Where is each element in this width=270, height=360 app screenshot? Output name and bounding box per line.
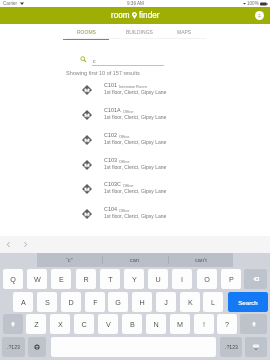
staticText: C103 xyxy=(104,157,117,163)
staticText: C103C xyxy=(104,181,121,187)
button[interactable]: K xyxy=(180,292,200,312)
button[interactable]: Search xyxy=(80,56,87,63)
staticText: “c” xyxy=(66,257,73,263)
button[interactable]: A xyxy=(13,292,33,312)
button[interactable]: Shift xyxy=(240,314,267,334)
staticText: D xyxy=(68,298,74,306)
staticText: 1st floor, Clerici, Gipsy Lane xyxy=(104,89,167,95)
staticText: 1st floor, Clerici, Gipsy Lane xyxy=(104,114,167,120)
staticText: c xyxy=(93,58,96,64)
button[interactable]: U xyxy=(148,269,168,289)
button[interactable]: E xyxy=(51,269,71,289)
button[interactable]: Previous field xyxy=(3,239,14,250)
button[interactable]: Shift xyxy=(3,314,23,334)
button[interactable]: Search xyxy=(228,292,268,312)
staticText: O xyxy=(204,275,210,283)
button[interactable]: C xyxy=(74,314,94,334)
staticText: Office xyxy=(119,208,130,212)
button[interactable]: H xyxy=(132,292,152,312)
button[interactable]: Account xyxy=(255,11,264,20)
button[interactable]: Hide keyboard xyxy=(245,337,267,357)
staticText: ROOMS xyxy=(77,29,96,35)
button[interactable]: G xyxy=(108,292,128,312)
button[interactable]: M xyxy=(170,314,190,334)
button[interactable]: L xyxy=(203,292,223,312)
staticText: 1st floor, Clerici, Gipsy Lane xyxy=(104,164,167,170)
button[interactable]: V xyxy=(98,314,118,334)
staticText: X xyxy=(58,320,63,328)
staticText: P xyxy=(229,275,234,283)
button[interactable]: can xyxy=(102,253,168,267)
staticText: L xyxy=(211,298,215,306)
staticText: Office xyxy=(119,159,130,163)
staticText: J xyxy=(164,298,168,306)
staticText: A xyxy=(21,298,26,306)
button[interactable]: Q xyxy=(3,269,23,289)
staticText: C101A xyxy=(104,107,121,113)
button[interactable]: B xyxy=(122,314,142,334)
staticText: V xyxy=(106,320,111,328)
button[interactable]: I xyxy=(172,269,192,289)
button[interactable]: N xyxy=(146,314,166,334)
button[interactable]: O xyxy=(197,269,217,289)
button[interactable]: ? xyxy=(217,314,237,334)
button[interactable]: W xyxy=(27,269,47,289)
staticText: 1st floor, Clerici, Gipsy Lane xyxy=(104,188,167,194)
button[interactable]: MAPS xyxy=(162,24,206,39)
staticText: S xyxy=(45,298,50,306)
staticText: room xyxy=(111,11,130,20)
staticText: BUILDINGS xyxy=(126,29,153,35)
staticText: C xyxy=(81,320,87,328)
button[interactable]: .?123 xyxy=(220,337,242,357)
staticText: MAPS xyxy=(177,29,192,35)
button[interactable]: T xyxy=(100,269,120,289)
button[interactable]: can’t xyxy=(168,253,233,267)
staticText: ? xyxy=(225,320,229,328)
button[interactable]: ROOMS xyxy=(63,24,109,40)
button[interactable]: C104 xyxy=(66,202,206,227)
button[interactable]: J xyxy=(156,292,176,312)
staticText: C104 xyxy=(104,206,117,212)
staticText: K xyxy=(188,298,193,306)
button[interactable]: Emoji xyxy=(28,337,46,357)
staticText: H xyxy=(139,298,145,306)
button[interactable]: C103C xyxy=(66,177,206,202)
staticText: can’t xyxy=(195,257,207,263)
staticText: can xyxy=(130,257,140,263)
staticText: C101 xyxy=(104,82,117,88)
staticText: .?123 xyxy=(7,344,20,350)
button[interactable]: D xyxy=(61,292,81,312)
staticText: E xyxy=(59,275,64,283)
staticText: .?123 xyxy=(225,344,238,350)
staticText: R xyxy=(83,275,89,283)
button[interactable]: C102 xyxy=(66,128,206,153)
button[interactable]: F xyxy=(85,292,105,312)
button[interactable]: BUILDINGS xyxy=(114,24,165,39)
button[interactable]: X xyxy=(50,314,70,334)
staticText: 100% xyxy=(247,1,259,6)
button[interactable]: Next field xyxy=(20,239,31,250)
button[interactable]: ! xyxy=(194,314,214,334)
button[interactable]: Z xyxy=(26,314,46,334)
button[interactable]: “c” xyxy=(37,253,102,267)
button[interactable]: .?123 xyxy=(2,337,25,357)
staticText: G xyxy=(115,298,121,306)
staticText: finder xyxy=(139,11,160,20)
staticText: M xyxy=(177,320,183,328)
staticText: Interview Room xyxy=(119,84,147,88)
button[interactable]: Y xyxy=(124,269,144,289)
staticText: Y xyxy=(132,275,137,283)
button[interactable]: C103 xyxy=(66,153,206,178)
button[interactable]: C101A xyxy=(66,103,206,128)
button[interactable]: S xyxy=(37,292,57,312)
button[interactable]: Backspace xyxy=(244,269,267,289)
button[interactable]: C101 xyxy=(66,78,206,103)
button[interactable]: R xyxy=(76,269,96,289)
staticText: Office xyxy=(123,109,134,113)
staticText: I xyxy=(181,275,183,283)
staticText: 1st floor, Clerici, Gipsy Lane xyxy=(104,139,167,145)
staticText: Z xyxy=(34,320,39,328)
staticText: Showing first 10 of 157 results xyxy=(66,70,140,76)
button[interactable]: P xyxy=(221,269,241,289)
